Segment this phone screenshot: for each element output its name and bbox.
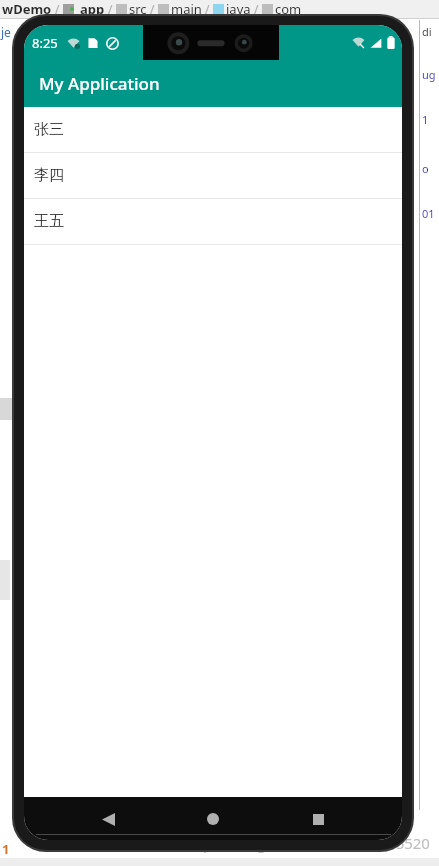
- button[interactable]: Recent apps: [297, 798, 339, 840]
- staticText: 1: [2, 840, 10, 858]
- staticText: My Application: [39, 72, 160, 95]
- staticText: di: [422, 24, 432, 39]
- staticText: app: [80, 0, 105, 18]
- button[interactable]: 王五: [24, 199, 402, 245]
- staticText: wDemo: [2, 0, 52, 18]
- staticText: /: [147, 1, 158, 17]
- staticText: 1: [422, 112, 429, 127]
- staticText: /: [251, 1, 262, 17]
- staticText: /: [52, 1, 63, 17]
- staticText: ug: [422, 67, 436, 82]
- staticText: 李四: [34, 166, 64, 185]
- staticText: https://blog.csdn.net/a1439775520: [183, 833, 430, 853]
- staticText: java: [226, 0, 251, 18]
- staticText: je: [1, 24, 11, 40]
- staticText: main: [171, 0, 202, 18]
- staticText: 王五: [34, 212, 64, 231]
- button[interactable]: My Application: [24, 60, 402, 107]
- button[interactable]: Back: [87, 798, 129, 840]
- staticText: 张三: [34, 120, 64, 139]
- staticText: com: [275, 0, 302, 18]
- button[interactable]: 张三: [24, 107, 402, 153]
- staticText: 8:25: [32, 34, 58, 52]
- button[interactable]: Home: [192, 798, 234, 840]
- staticText: /: [105, 1, 116, 17]
- staticText: o: [422, 161, 429, 176]
- button[interactable]: 李四: [24, 153, 402, 199]
- staticText: 01: [422, 206, 435, 221]
- staticText: /: [202, 1, 213, 17]
- staticText: src: [129, 0, 147, 18]
